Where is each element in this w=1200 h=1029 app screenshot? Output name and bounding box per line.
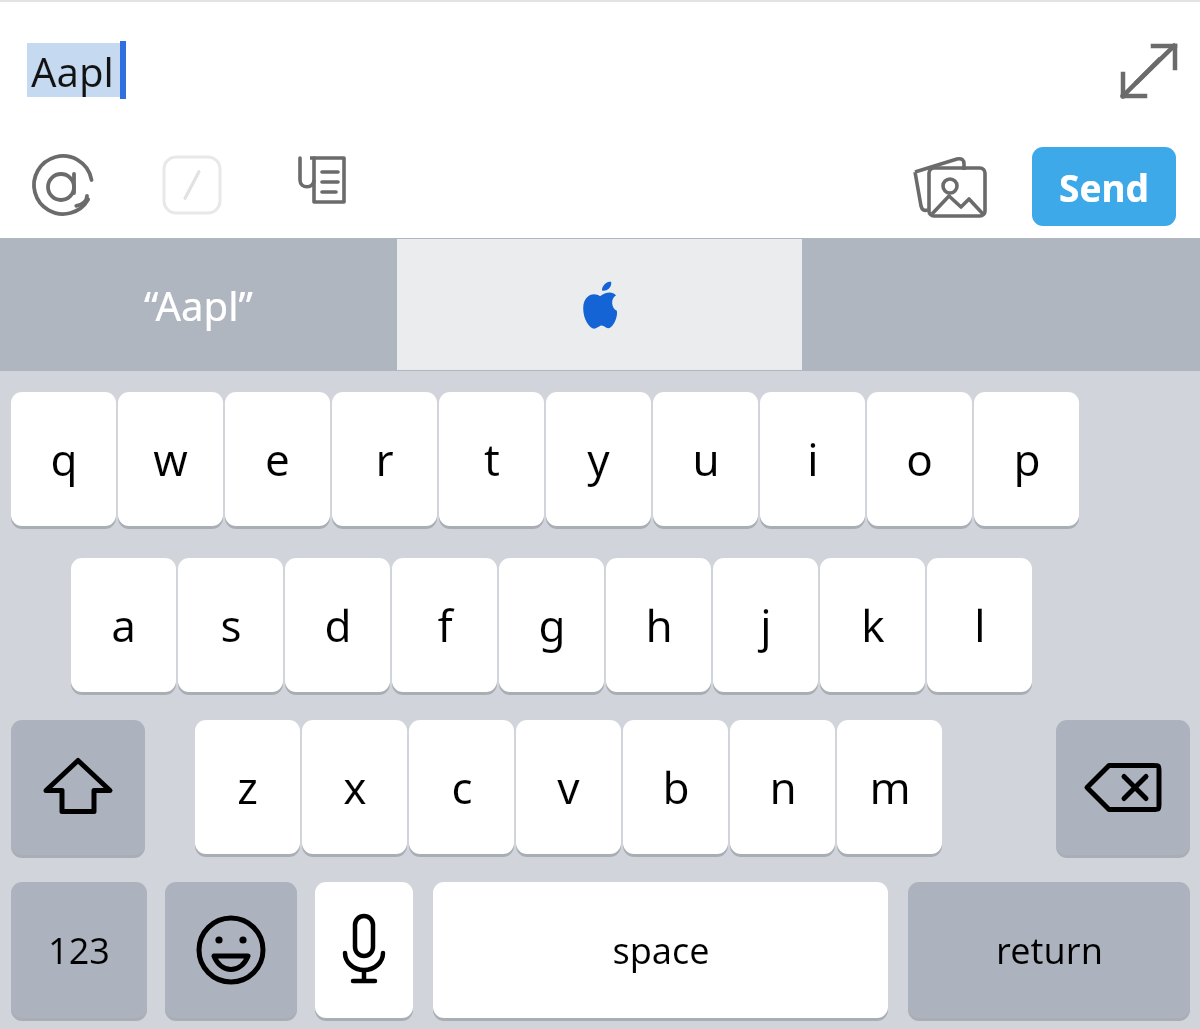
staticText: return [996, 926, 1103, 975]
button[interactable]: “Aapl” [0, 238, 396, 371]
staticText: b [662, 757, 690, 817]
staticText: 123 [48, 926, 110, 975]
button[interactable]: Slash command [163, 156, 221, 214]
staticText: s [220, 595, 242, 655]
staticText: space [612, 926, 710, 975]
button[interactable]: return [908, 882, 1190, 1018]
button[interactable]: i [760, 392, 865, 526]
button[interactable]: Delete [1056, 720, 1190, 855]
button[interactable]: k [820, 558, 925, 692]
staticText: d [324, 595, 352, 655]
button[interactable]: Attach file [288, 150, 354, 216]
button[interactable]: u [653, 392, 758, 526]
button[interactable]: r [332, 392, 437, 526]
staticText: j [760, 595, 772, 655]
button[interactable]: x [302, 720, 407, 854]
button[interactable]: a [71, 558, 176, 692]
staticText: x [343, 757, 367, 817]
button[interactable]: Dictation [315, 882, 413, 1018]
button[interactable]: g [499, 558, 604, 692]
button[interactable]: space [433, 882, 888, 1018]
staticText: h [645, 595, 673, 655]
staticText: u [692, 429, 720, 489]
staticText: v [557, 757, 580, 817]
button[interactable]: f [392, 558, 497, 692]
button[interactable]: n [730, 720, 835, 854]
button[interactable]: d [285, 558, 390, 692]
button[interactable]: e [225, 392, 330, 526]
button[interactable]: m [837, 720, 942, 854]
staticText: m [869, 757, 911, 817]
button[interactable]: q [11, 392, 116, 526]
staticText: i [807, 429, 819, 489]
button[interactable]: j [713, 558, 818, 692]
button[interactable]: Mention [28, 150, 98, 220]
button[interactable]: o [867, 392, 972, 526]
staticText: n [769, 757, 797, 817]
staticText: e [265, 429, 290, 489]
button[interactable]: y [546, 392, 651, 526]
button[interactable]: v [516, 720, 621, 854]
staticText: r [375, 429, 394, 489]
button[interactable]: s [178, 558, 283, 692]
staticText: z [237, 757, 258, 817]
button[interactable]: Apple suggestion [397, 239, 802, 370]
button[interactable]: t [439, 392, 544, 526]
button[interactable]: Expand [1112, 35, 1184, 107]
button[interactable]: h [606, 558, 711, 692]
staticText: “Aapl” [144, 278, 253, 332]
staticText: y [587, 429, 610, 489]
button[interactable]: 123 [11, 882, 147, 1018]
button[interactable]: Add image [905, 150, 991, 226]
staticText: c [451, 757, 473, 817]
staticText: a [111, 595, 136, 655]
staticText: p [1013, 429, 1041, 489]
staticText: g [538, 595, 566, 655]
staticText: l [974, 595, 986, 655]
button[interactable]: b [623, 720, 728, 854]
button[interactable]: Emoji [165, 882, 297, 1018]
staticText: t [484, 429, 500, 489]
staticText: w [153, 429, 188, 489]
staticText: f [437, 595, 453, 655]
staticText: k [861, 595, 885, 655]
button[interactable]: Shift [11, 720, 145, 855]
button[interactable]: p [974, 392, 1079, 526]
button[interactable]: Send [1032, 147, 1176, 226]
staticText: Send [1059, 162, 1149, 212]
button[interactable]: z [195, 720, 300, 854]
staticText: Aapl [31, 44, 114, 98]
button[interactable]: l [927, 558, 1032, 692]
staticText: q [50, 429, 78, 489]
button[interactable]: c [409, 720, 514, 854]
button[interactable]: w [118, 392, 223, 526]
staticText: o [906, 429, 933, 489]
